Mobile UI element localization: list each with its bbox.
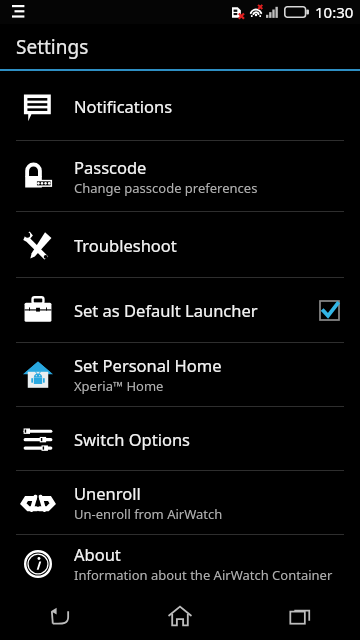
staticText: Troubleshoot: [74, 234, 177, 256]
staticText: Settings: [16, 34, 89, 60]
staticText: Set Personal Home: [74, 354, 222, 376]
staticText: Xperia™ Home: [74, 377, 164, 395]
staticText: Passcode: [74, 156, 147, 178]
staticText: Change passcode preferences: [74, 179, 258, 197]
button[interactable]: Unenroll: [0, 471, 360, 534]
button[interactable]: Recent apps: [240, 592, 360, 640]
staticText: Set as Default Launcher: [74, 299, 258, 321]
button[interactable]: Passcode: [0, 141, 360, 211]
button[interactable]: Set Personal Home: [0, 343, 360, 406]
staticText: Un-enroll from AirWatch: [74, 505, 223, 523]
button[interactable]: Back: [0, 592, 120, 640]
staticText: 10:30: [315, 2, 354, 22]
staticText: Information about the AirWatch Container: [74, 566, 333, 584]
staticText: About: [74, 543, 121, 565]
button[interactable]: Set as Default Launcher: [0, 278, 360, 342]
staticText: Switch Options: [74, 428, 190, 450]
button[interactable]: Home: [120, 592, 240, 640]
button[interactable]: Switch Options: [0, 407, 360, 470]
staticText: Notifications: [74, 95, 173, 117]
button[interactable]: Notifications: [0, 71, 360, 140]
button[interactable]: Set as Default Launcher checkbox: [314, 295, 344, 325]
staticText: Unenroll: [74, 482, 141, 504]
button[interactable]: About: [0, 535, 360, 592]
button[interactable]: Troubleshoot: [0, 212, 360, 277]
